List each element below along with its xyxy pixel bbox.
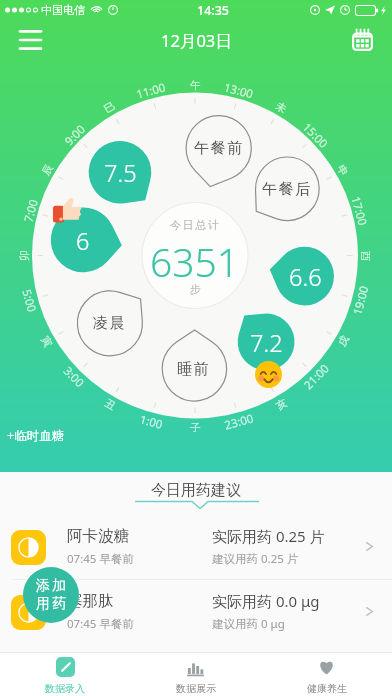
- staticText: 未: [273, 99, 289, 116]
- staticText: 阿卡波糖: [67, 526, 129, 546]
- button[interactable]: +临时血糖: [4, 425, 68, 446]
- staticText: 建议用药 0.25 片: [212, 551, 299, 567]
- button[interactable]: 塞那肽: [0, 581, 392, 644]
- staticText: 实际用药 0.0 μg: [212, 591, 320, 611]
- button[interactable]: 6: [43, 225, 123, 255]
- staticText: 午餐后: [262, 180, 312, 199]
- staticText: 辰: [39, 162, 56, 178]
- staticText: 5:00: [20, 288, 40, 313]
- staticText: 今日用药建议: [151, 481, 241, 500]
- button[interactable]: 午餐前: [179, 133, 259, 163]
- staticText: 酉: [359, 251, 372, 262]
- button[interactable]: 数据录入: [0, 653, 130, 696]
- button[interactable]: 凌晨: [70, 308, 150, 338]
- staticText: 塞那肽: [67, 591, 114, 611]
- staticText: 巳: [102, 99, 118, 116]
- staticText: 12月03日: [161, 29, 232, 52]
- staticText: 数据录入: [45, 682, 85, 695]
- staticText: 亥: [274, 396, 290, 413]
- staticText: 实际用药 0.25 片: [212, 526, 325, 546]
- button[interactable]: 数据展示: [130, 653, 261, 696]
- staticText: 午餐前: [194, 139, 244, 158]
- staticText: 建议用药 0 μg: [212, 616, 285, 632]
- staticText: 11:00: [135, 79, 167, 101]
- staticText: 07:45 早餐前: [67, 551, 134, 567]
- button[interactable]: 阿卡波糖: [0, 516, 392, 579]
- staticText: 今日总计: [170, 218, 221, 232]
- staticText: 丑: [102, 396, 118, 413]
- staticText: 3:00: [61, 363, 87, 389]
- button[interactable]: 睡前: [154, 354, 234, 384]
- staticText: +临时血糖: [7, 427, 65, 444]
- staticText: 23:00: [223, 410, 255, 432]
- staticText: 7.2: [250, 327, 283, 357]
- staticText: 午: [190, 79, 201, 92]
- staticText: 07:45 早餐前: [67, 616, 134, 632]
- staticText: 数据展示: [176, 682, 216, 695]
- staticText: 6351: [150, 235, 240, 279]
- staticText: 健康养生: [307, 682, 347, 695]
- staticText: 步: [190, 282, 201, 296]
- button[interactable]: Menu: [8, 20, 52, 60]
- staticText: 睡前: [177, 360, 211, 379]
- button[interactable]: Calendar: [340, 20, 384, 60]
- staticText: 15:00: [300, 119, 331, 150]
- staticText: 中国电信: [41, 3, 85, 17]
- staticText: 7.5: [104, 157, 137, 187]
- staticText: 14:35: [197, 2, 230, 19]
- button[interactable]: 6.6: [265, 261, 345, 291]
- staticText: 19:00: [349, 284, 371, 316]
- staticText: 17:00: [349, 195, 371, 227]
- button[interactable]: 健康养生: [261, 653, 392, 696]
- staticText: 9:00: [61, 122, 87, 148]
- staticText: 卯: [18, 250, 31, 261]
- staticText: 13:00: [223, 79, 255, 101]
- staticText: 添加 用药: [35, 577, 67, 613]
- staticText: 戌: [335, 333, 352, 349]
- staticText: 寅: [38, 334, 55, 350]
- staticText: 21:00: [300, 360, 331, 391]
- staticText: 6: [76, 225, 90, 255]
- staticText: 7:00: [20, 198, 40, 223]
- staticText: 申: [334, 163, 351, 179]
- staticText: 1:00: [139, 411, 164, 431]
- button[interactable]: 添加 用药: [23, 567, 79, 623]
- staticText: 6.6: [289, 261, 322, 291]
- button[interactable]: 7.2: [226, 327, 306, 357]
- button[interactable]: 午餐后: [247, 174, 327, 204]
- button[interactable]: 7.5: [80, 157, 160, 187]
- staticText: 子: [190, 421, 201, 434]
- staticText: 凌晨: [93, 314, 127, 333]
